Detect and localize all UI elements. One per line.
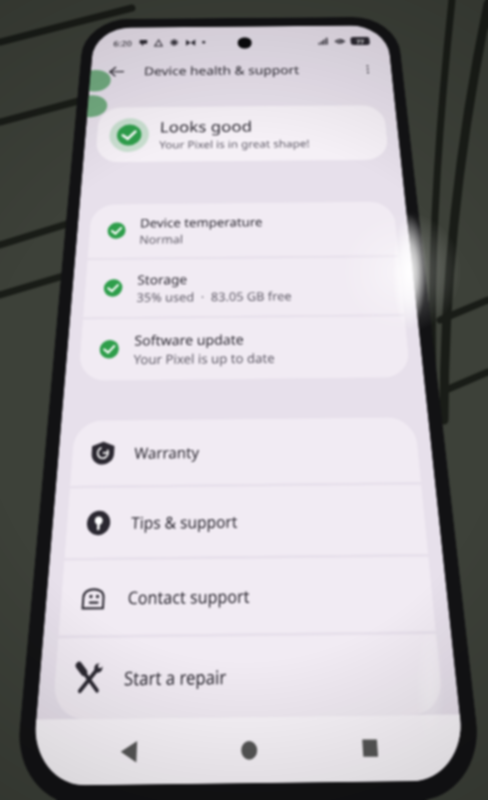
staticText: Device health & support bbox=[144, 62, 300, 79]
button[interactable]: Warranty bbox=[70, 417, 421, 486]
staticText: 35% used · 83.05 GB free bbox=[136, 288, 292, 306]
button[interactable]: Recents bbox=[341, 717, 400, 780]
button[interactable]: Back bbox=[99, 719, 156, 784]
staticText: Storage bbox=[137, 270, 188, 288]
button[interactable]: Storage bbox=[83, 257, 404, 317]
button[interactable]: Device temperature bbox=[87, 202, 399, 258]
staticText: Start a repair bbox=[123, 664, 226, 691]
staticText: Device temperature bbox=[140, 214, 263, 231]
staticText: Contact support bbox=[127, 584, 250, 609]
staticText: Warranty bbox=[134, 442, 200, 463]
staticText: Looks good bbox=[159, 116, 253, 137]
staticText: Tips & support bbox=[131, 510, 238, 534]
staticText: 6:20 bbox=[113, 38, 132, 48]
button[interactable]: Tips & support bbox=[64, 484, 428, 558]
button[interactable]: Contact support bbox=[58, 556, 436, 636]
button[interactable]: Back bbox=[98, 58, 133, 85]
staticText: Your Pixel is in great shape! bbox=[159, 136, 311, 152]
button[interactable]: Software update bbox=[78, 316, 411, 381]
staticText: Software update bbox=[134, 330, 244, 349]
staticText: 77 bbox=[356, 37, 365, 45]
button[interactable]: Looks good bbox=[95, 105, 389, 162]
button[interactable]: Start a repair bbox=[52, 634, 444, 719]
staticText: Your Pixel is up to date bbox=[133, 349, 275, 368]
button[interactable]: More options bbox=[354, 59, 380, 79]
button[interactable]: Home bbox=[221, 718, 276, 782]
staticText: Normal bbox=[139, 231, 183, 247]
